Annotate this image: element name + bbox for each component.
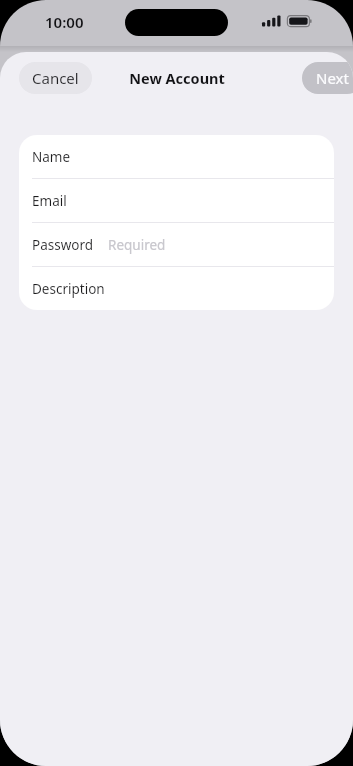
button[interactable]: Description xyxy=(19,267,334,310)
button[interactable]: Password xyxy=(19,223,334,267)
button[interactable]: Name xyxy=(19,135,334,179)
staticText: Description xyxy=(32,280,105,298)
button[interactable]: Next xyxy=(302,62,353,94)
staticText: Password xyxy=(32,236,94,254)
staticText: New Account xyxy=(129,68,225,88)
staticText: Name xyxy=(32,148,71,166)
staticText: Email xyxy=(32,192,67,210)
staticText: Cancel xyxy=(32,68,79,88)
button[interactable]: Email xyxy=(19,179,334,223)
staticText: 10:00 xyxy=(45,12,84,32)
button[interactable]: Cancel xyxy=(19,62,92,94)
staticText: Next xyxy=(316,68,349,88)
staticText: Required xyxy=(108,236,166,254)
